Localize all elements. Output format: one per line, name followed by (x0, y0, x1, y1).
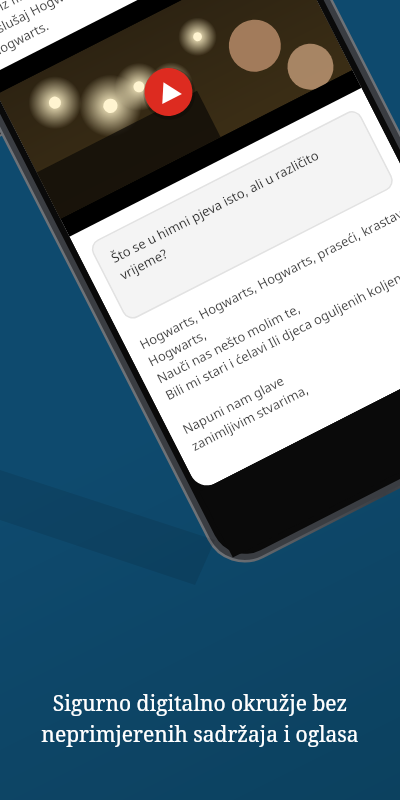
staticText: Sigurno digitalno okružje bez neprimjere… (41, 689, 359, 748)
button[interactable]: Sigurno digitalno okružje bez neprimjere… (18, 689, 382, 748)
